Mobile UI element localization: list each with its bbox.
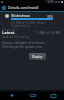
staticText: Details.com/install [8, 5, 39, 10]
button[interactable]: Back [0, 89, 22, 100]
button[interactable]: Recent apps [43, 89, 64, 100]
staticText: Slideshow [11, 13, 30, 18]
button[interactable]: Details.com/install [0, 4, 64, 11]
staticText: 12:05 [46, 0, 54, 4]
staticText: 38% [47, 15, 53, 19]
staticText: Display [32, 55, 43, 59]
staticText: Telecharger the update now [2, 45, 42, 49]
staticText: Display intelligent information [2, 41, 45, 45]
staticText: Latest [2, 30, 15, 35]
staticText: Downloading [11, 24, 30, 28]
button[interactable]: Home [22, 89, 43, 100]
staticText: 1.5 MB of 4.2 MB [35, 31, 61, 35]
button[interactable]: Display [29, 53, 46, 60]
staticText: Android 4.0 and up [2, 35, 29, 39]
staticText: 2.6 MB of 7.4 MB, 18 sec [11, 21, 46, 25]
staticText: Version 3.1 [2, 28, 18, 32]
